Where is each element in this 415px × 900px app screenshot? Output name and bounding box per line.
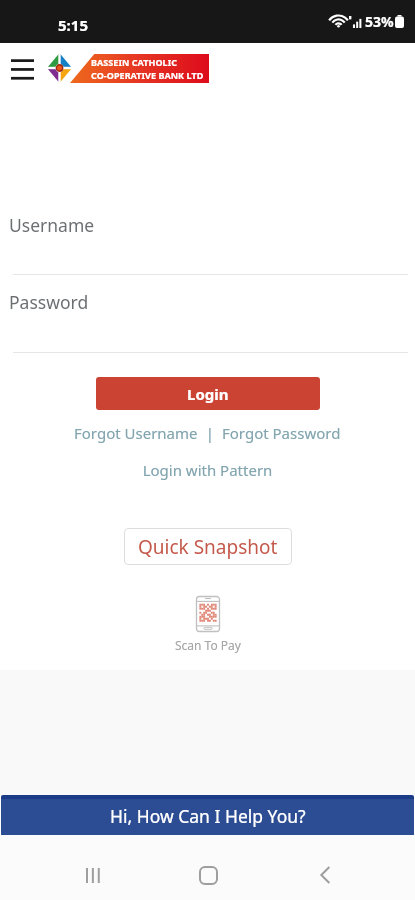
- button[interactable]: Password: [0, 283, 415, 353]
- button[interactable]: Scan To Pay: [0, 596, 415, 653]
- button[interactable]: Quick Snapshot: [124, 528, 292, 565]
- staticText: BASSEIN CATHOLIC: [91, 56, 178, 68]
- button[interactable]: Forgot Password: [222, 423, 341, 443]
- button[interactable]: Menu: [6, 52, 38, 84]
- button[interactable]: Home: [184, 851, 232, 899]
- staticText: 5:15: [58, 15, 88, 35]
- staticText: Quick Snapshot: [138, 534, 278, 560]
- staticText: Login: [187, 384, 229, 404]
- button[interactable]: Login: [96, 377, 320, 410]
- staticText: 53%: [365, 12, 394, 31]
- staticText: Hi, How Can I Help You?: [110, 804, 306, 828]
- staticText: Scan To Pay: [175, 637, 241, 653]
- staticText: |: [198, 423, 222, 443]
- button[interactable]: Recents: [69, 851, 117, 899]
- button[interactable]: Login with Pattern: [0, 460, 415, 480]
- staticText: CO-OPERATIVE BANK LTD: [91, 69, 204, 81]
- button[interactable]: Back: [301, 851, 349, 899]
- button[interactable]: Username: [0, 206, 415, 275]
- staticText: Password: [9, 290, 89, 314]
- button[interactable]: Forgot Username: [74, 423, 198, 443]
- button[interactable]: Hi, How Can I Help You?: [1, 795, 414, 836]
- staticText: Username: [9, 213, 95, 237]
